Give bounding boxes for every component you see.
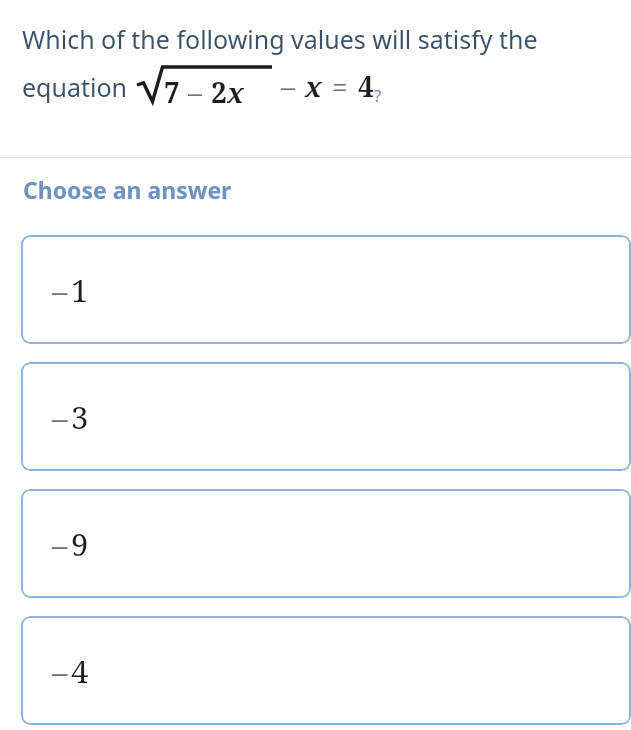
staticText: – <box>52 269 68 311</box>
staticText: – <box>52 650 68 692</box>
staticText: – <box>188 73 203 108</box>
button[interactable]: – <box>21 362 631 471</box>
staticText: equation <box>22 70 128 104</box>
staticText: 4 <box>358 67 374 105</box>
button[interactable]: – <box>21 235 631 344</box>
staticText: – <box>52 396 68 438</box>
staticText: – <box>281 67 296 105</box>
staticText: 3 <box>71 396 89 438</box>
button[interactable]: – <box>21 616 631 725</box>
staticText: 7 <box>164 73 180 108</box>
staticText: – <box>52 523 68 565</box>
staticText: 9 <box>71 523 89 565</box>
staticText: 2 <box>211 73 227 108</box>
staticText: 1 <box>71 269 89 311</box>
staticText: Choose an answer <box>23 174 232 205</box>
staticText: Which of the following values will satis… <box>22 22 538 56</box>
staticText: x <box>227 73 244 108</box>
button[interactable]: – <box>21 489 631 598</box>
staticText: ? <box>374 84 382 107</box>
staticText: 4 <box>71 650 89 692</box>
staticText: x <box>305 67 322 105</box>
staticText: = <box>332 67 348 105</box>
